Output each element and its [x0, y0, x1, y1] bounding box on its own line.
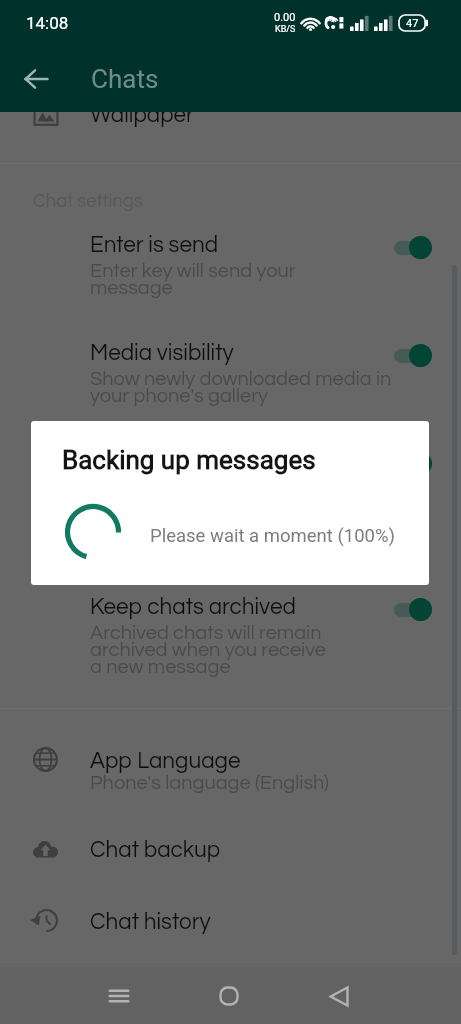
staticText: Wallpaper	[90, 104, 194, 127]
button[interactable]: Toggle	[394, 344, 432, 367]
staticText: Font size	[90, 450, 179, 473]
button[interactable]: Home	[205, 972, 253, 1020]
staticText: Keep chats archived	[90, 596, 296, 619]
button[interactable]	[0, 870, 461, 942]
staticText: Chat history	[90, 911, 211, 934]
staticText: 47	[406, 17, 419, 30]
button[interactable]: Toggle	[394, 452, 432, 475]
staticText: KB/S	[275, 24, 296, 35]
staticText: Chat backup	[90, 839, 221, 862]
button[interactable]	[0, 222, 461, 330]
staticText: 0.00	[274, 11, 296, 24]
staticText: Please wait a moment (100%)	[150, 525, 395, 547]
staticText: Show newly downloaded media in your phon…	[90, 369, 392, 406]
button[interactable]: Toggle	[394, 236, 432, 259]
button[interactable]	[0, 584, 461, 708]
button[interactable]: Recent apps	[95, 972, 143, 1020]
staticText: App Language	[90, 750, 241, 773]
button[interactable]	[0, 798, 461, 870]
staticText: Media visibility	[90, 342, 234, 365]
staticText: Chats	[91, 64, 159, 94]
staticText: Enter key will send your message	[90, 261, 296, 298]
button[interactable]: Toggle	[394, 598, 432, 621]
button[interactable]: Back	[8, 51, 64, 107]
staticText: Phone's language (English)	[90, 773, 329, 794]
button[interactable]	[0, 112, 461, 163]
staticText: Backing up messages	[62, 445, 316, 475]
staticText: Enter is send	[90, 234, 219, 257]
button[interactable]: Back	[315, 972, 363, 1020]
button[interactable]	[0, 330, 461, 438]
staticText: Chat settings	[33, 192, 143, 211]
button[interactable]	[0, 709, 461, 798]
staticText: Archived chats will remain archived when…	[90, 623, 326, 677]
staticText: 14:08	[26, 13, 69, 33]
